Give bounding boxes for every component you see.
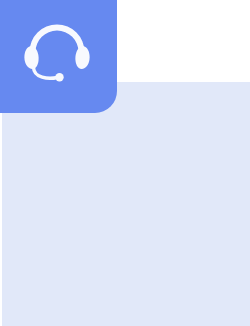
button[interactable]: Support headset [0,0,117,113]
